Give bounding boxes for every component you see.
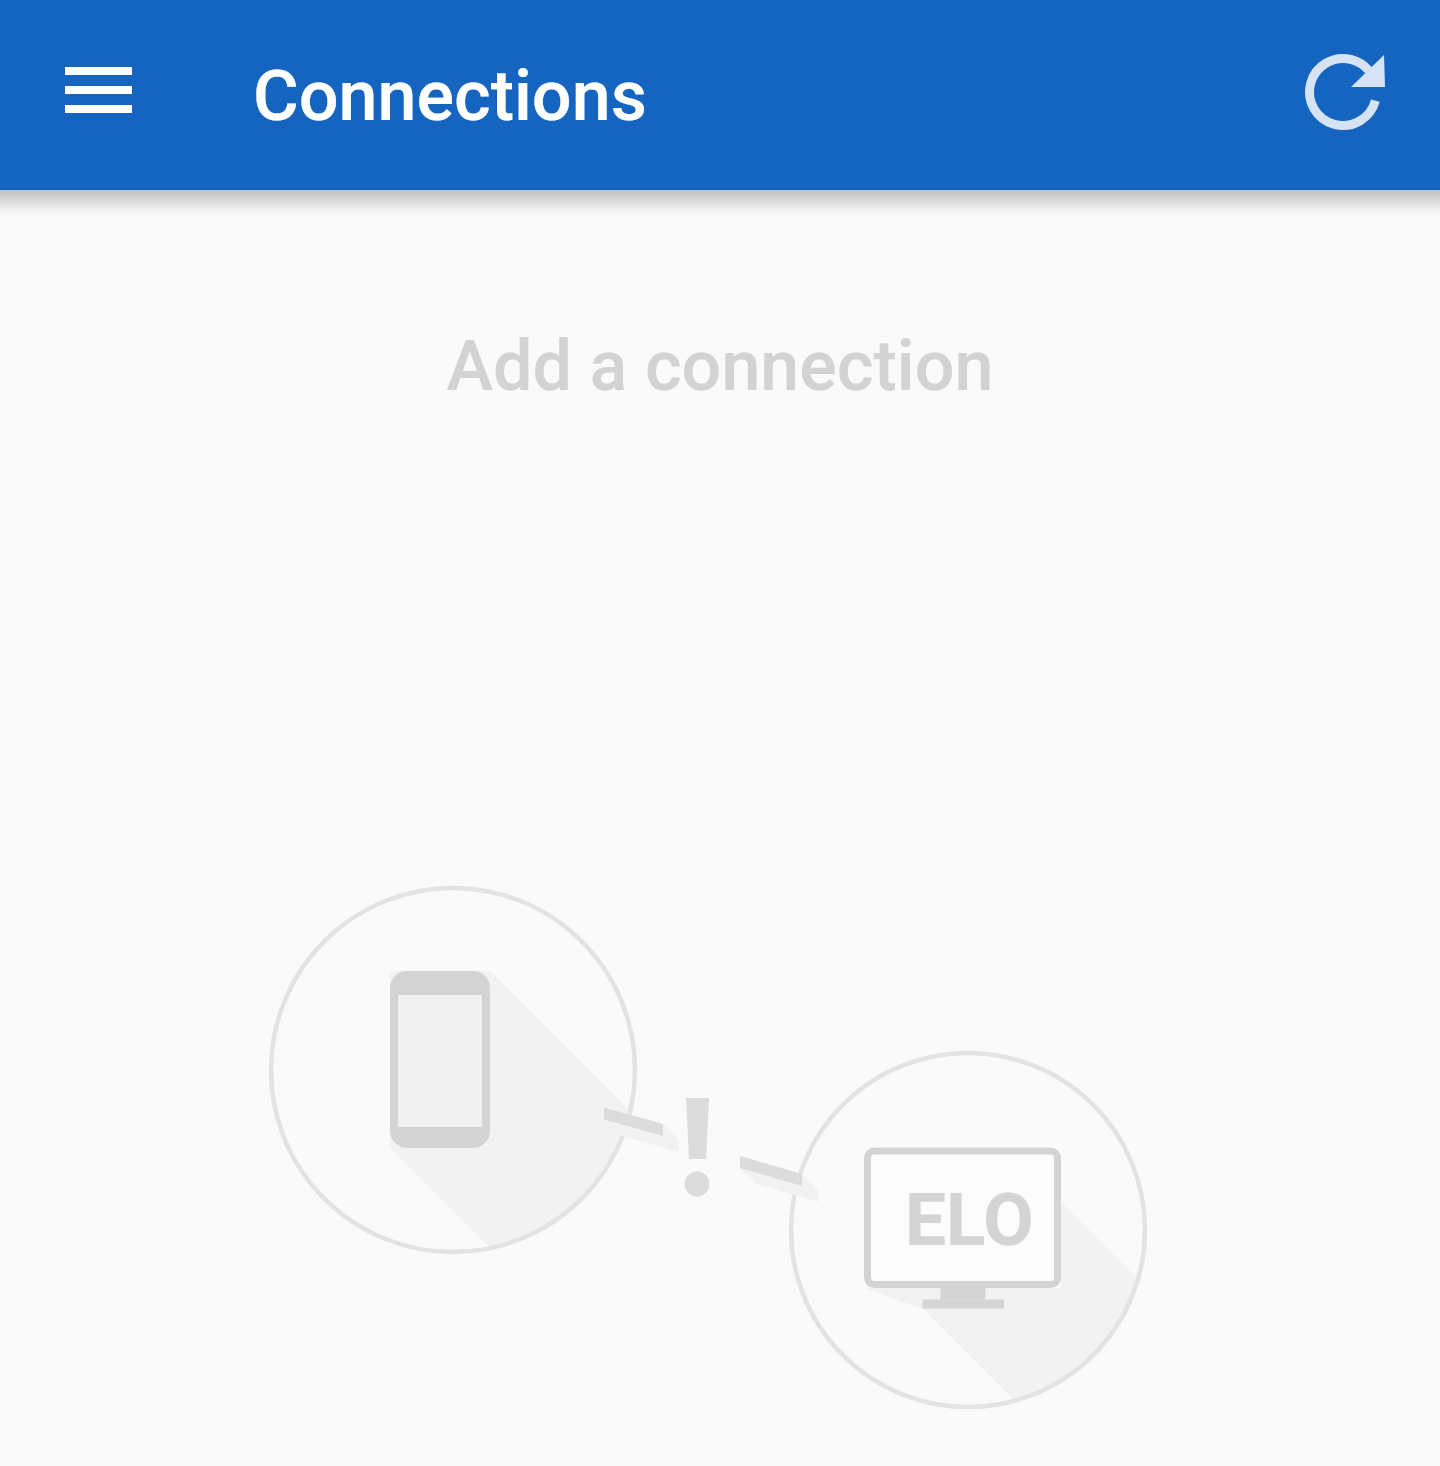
- staticText: Connections: [253, 55, 647, 137]
- staticText: ELO: [905, 1177, 1034, 1263]
- button[interactable]: Refresh: [1275, 24, 1411, 160]
- button[interactable]: Open navigation menu: [30, 22, 166, 158]
- staticText: Add a connection: [446, 325, 994, 407]
